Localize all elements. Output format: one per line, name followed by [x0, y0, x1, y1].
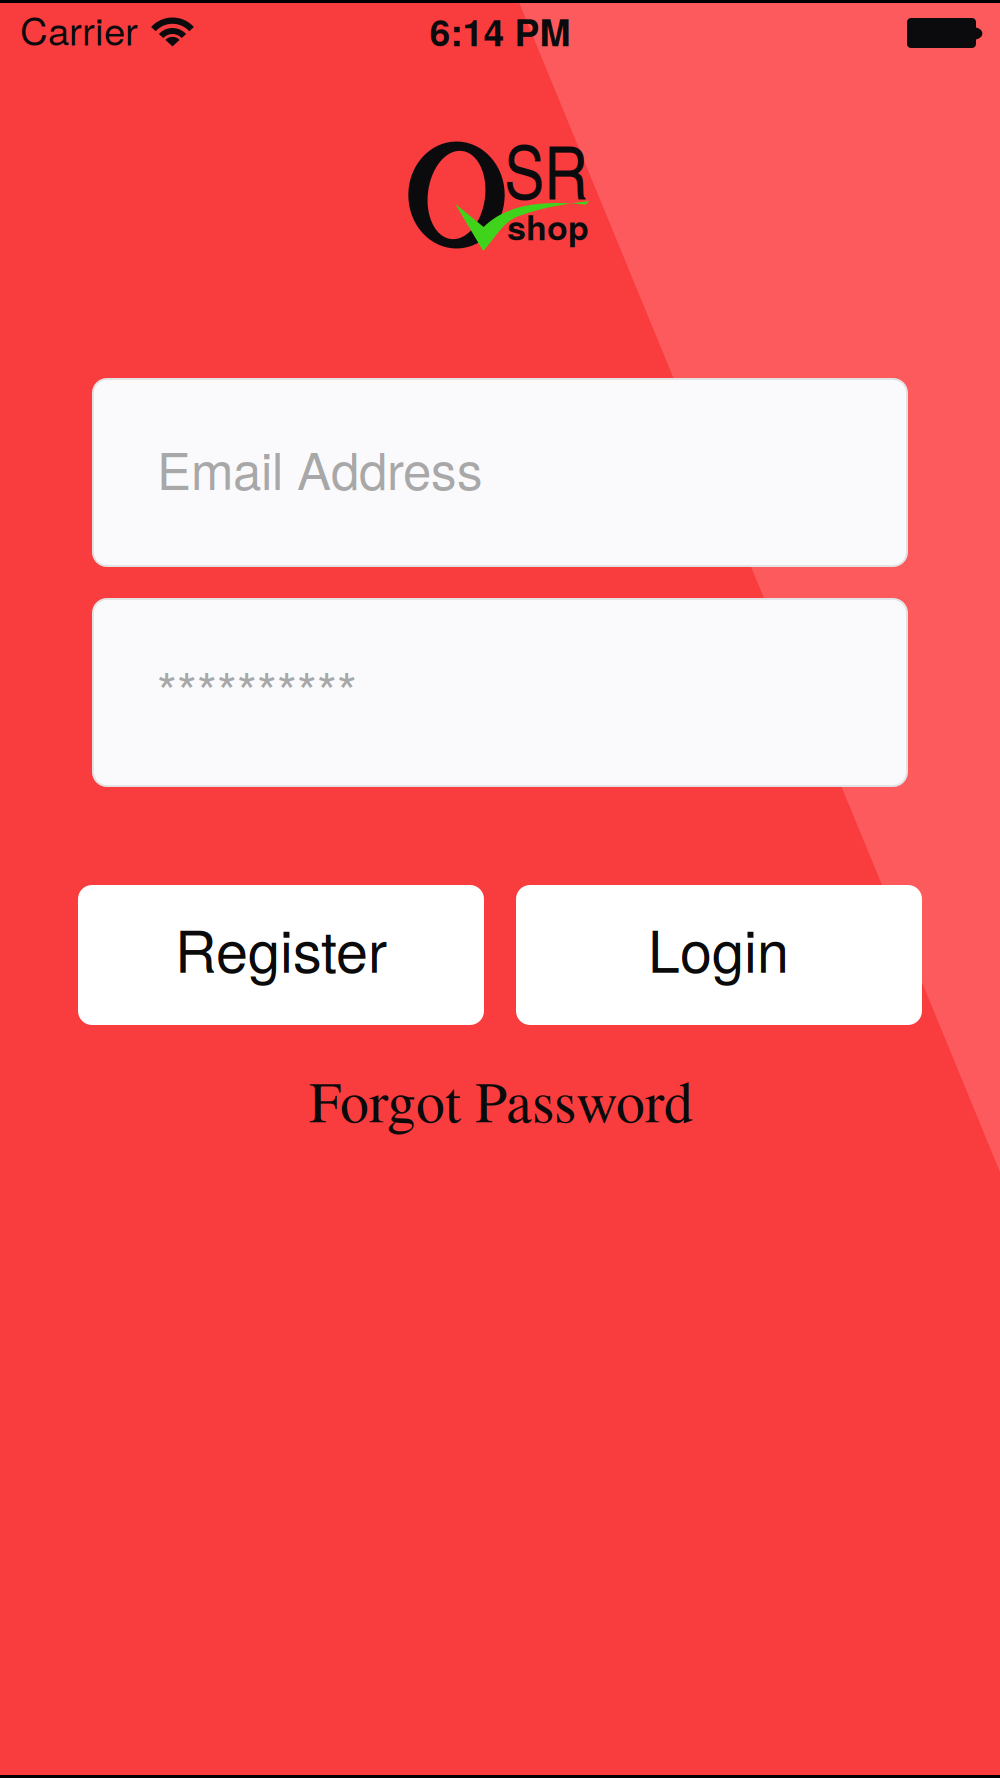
button[interactable]: Register [78, 885, 484, 1025]
button[interactable]: ********** [93, 599, 907, 786]
button[interactable]: Login [516, 885, 922, 1025]
staticText: SR [504, 119, 588, 220]
staticText: ********** [157, 651, 357, 724]
staticText: 6:14 PM [429, 4, 570, 58]
staticText: Forgot Password [309, 1061, 693, 1139]
staticText: Login [648, 907, 789, 989]
staticText: Register [175, 907, 387, 989]
button[interactable]: Email Address [93, 379, 907, 566]
staticText: Carrier [20, 2, 138, 56]
staticText: shop [507, 202, 589, 251]
button[interactable]: Forgot Password [309, 1060, 709, 1140]
staticText: Email Address [157, 431, 483, 504]
